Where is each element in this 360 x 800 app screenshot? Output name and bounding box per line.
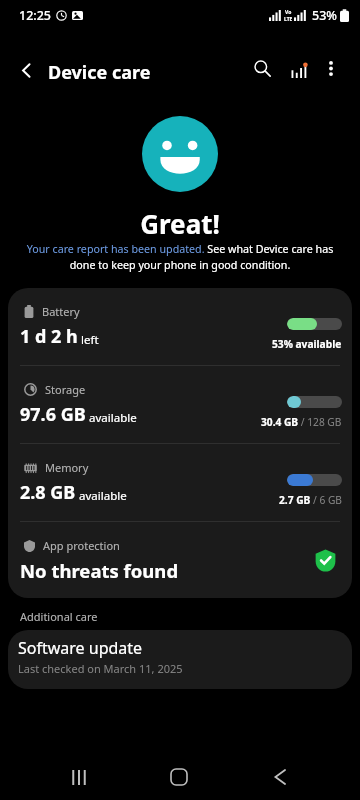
staticText: Storage [45, 382, 86, 397]
button[interactable]: Battery [8, 288, 352, 365]
staticText: left [81, 332, 99, 348]
button[interactable]: More options [311, 48, 351, 88]
staticText: 2.7 GB / 6 GB [279, 493, 342, 507]
staticText: Vo [285, 9, 292, 16]
staticText: 53% [312, 7, 337, 24]
staticText: Additional care [20, 609, 98, 624]
button[interactable]: Search [242, 48, 282, 88]
staticText: No threats found [20, 558, 179, 583]
staticText: LTE [284, 16, 293, 23]
button[interactable]: Software update [8, 630, 352, 689]
button[interactable]: Navigate up [9, 53, 43, 87]
staticText: 12:25 [19, 7, 52, 24]
staticText: App protection [43, 538, 120, 553]
staticText: Last checked on March 11, 2025 [18, 661, 183, 676]
staticText: 97.6 GB [20, 402, 86, 427]
staticText: Device care [48, 60, 151, 85]
button[interactable]: Back [252, 749, 308, 800]
staticText: Great! [0, 206, 360, 241]
button[interactable]: Home [151, 749, 207, 800]
button[interactable]: Storage [8, 366, 352, 443]
staticText: available [79, 488, 127, 504]
button[interactable]: App protection [8, 522, 352, 598]
staticText: Your care report has been updated. See w… [18, 242, 342, 272]
staticText: 1 d 2 h [20, 324, 78, 349]
staticText: Software update [18, 637, 143, 659]
button[interactable]: Usage history [279, 51, 319, 91]
staticText: Battery [42, 304, 80, 319]
staticText: 30.4 GB / 128 GB [261, 415, 342, 429]
staticText: available [89, 410, 137, 426]
button[interactable]: Memory [8, 444, 352, 521]
button[interactable]: Recent apps [51, 749, 107, 800]
staticText: 2.8 GB [20, 480, 76, 505]
staticText: 53% available [272, 337, 342, 351]
staticText: Memory [45, 460, 89, 475]
